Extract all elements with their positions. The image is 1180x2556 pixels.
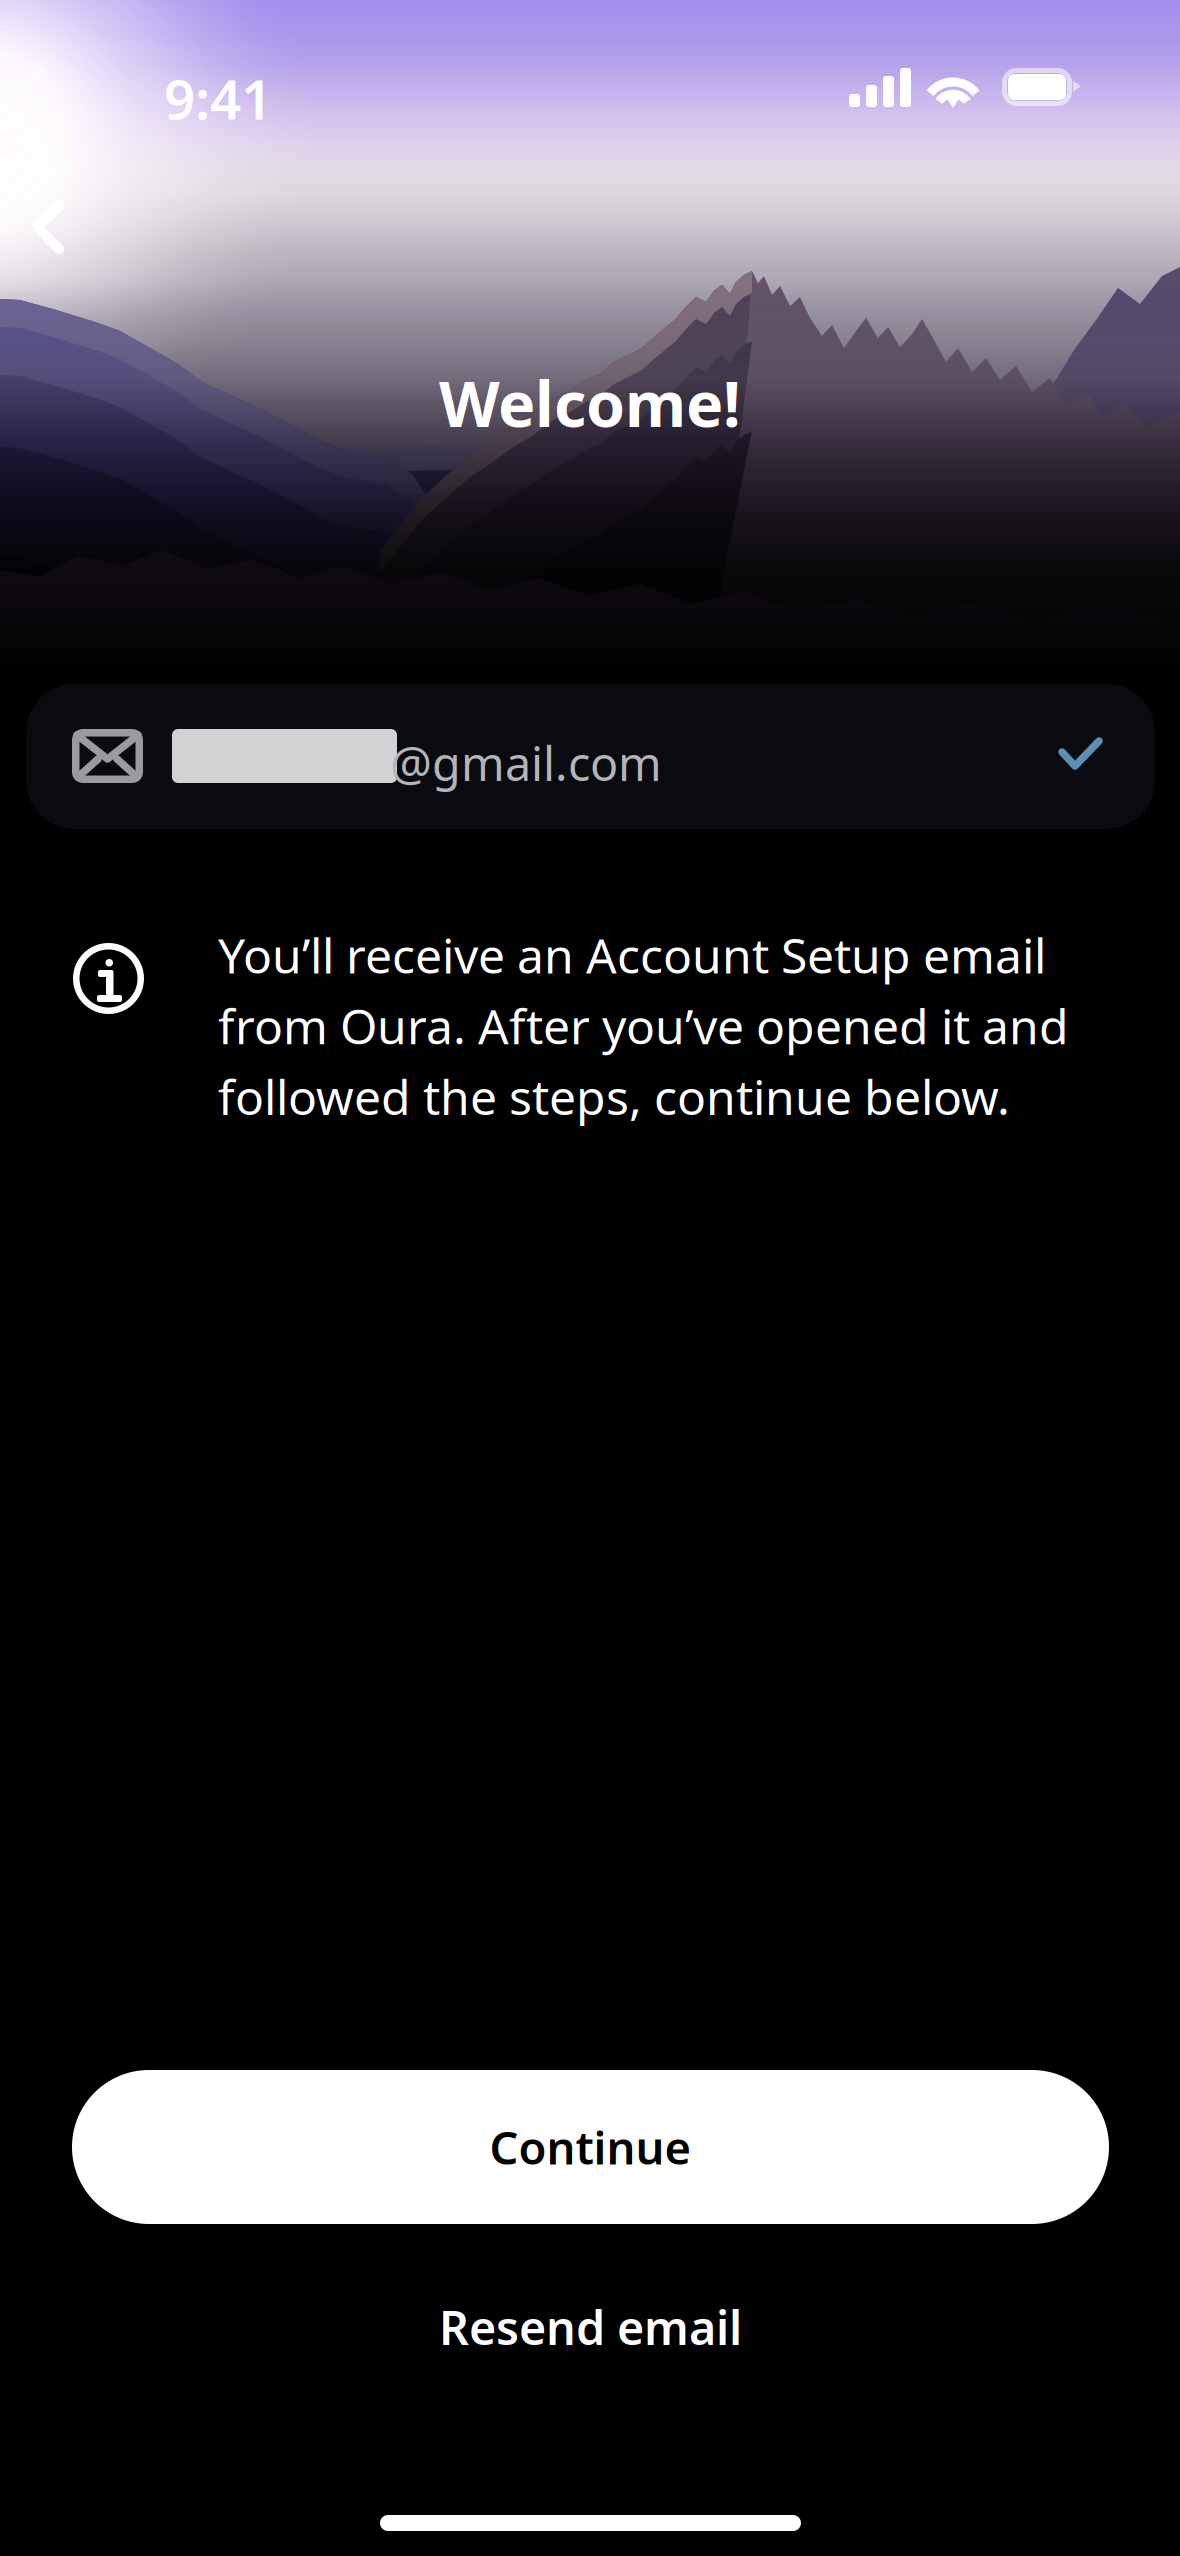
button[interactable]: @gmail.com (26, 684, 1155, 829)
staticText: @gmail.com (390, 732, 662, 794)
button[interactable]: Continue (72, 2070, 1109, 2224)
button[interactable]: Resend email (72, 2273, 1109, 2381)
button[interactable]: Back (0, 179, 96, 275)
staticText: Welcome! (439, 361, 741, 444)
staticText: You’ll receive an Account Setup email fr… (218, 923, 1069, 1128)
staticText: Continue (489, 2117, 691, 2177)
staticText: 9:41 (164, 62, 272, 135)
staticText: Resend email (439, 2296, 742, 2358)
